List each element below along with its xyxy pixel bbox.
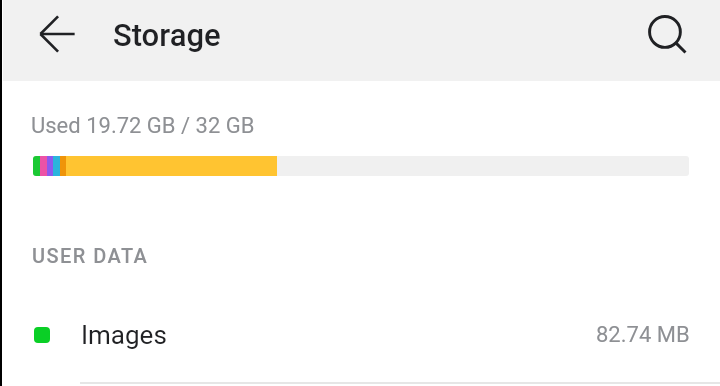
button[interactable]: Back [33, 10, 81, 58]
button[interactable]: Images [0, 296, 720, 373]
staticText: Storage [113, 17, 221, 53]
staticText: 82.74 MB [596, 322, 690, 348]
staticText: Images [81, 320, 167, 350]
staticText: USER DATA [32, 244, 149, 267]
staticText: Used 19.72 GB / 32 GB [31, 113, 255, 139]
button[interactable]: Search [644, 11, 692, 59]
